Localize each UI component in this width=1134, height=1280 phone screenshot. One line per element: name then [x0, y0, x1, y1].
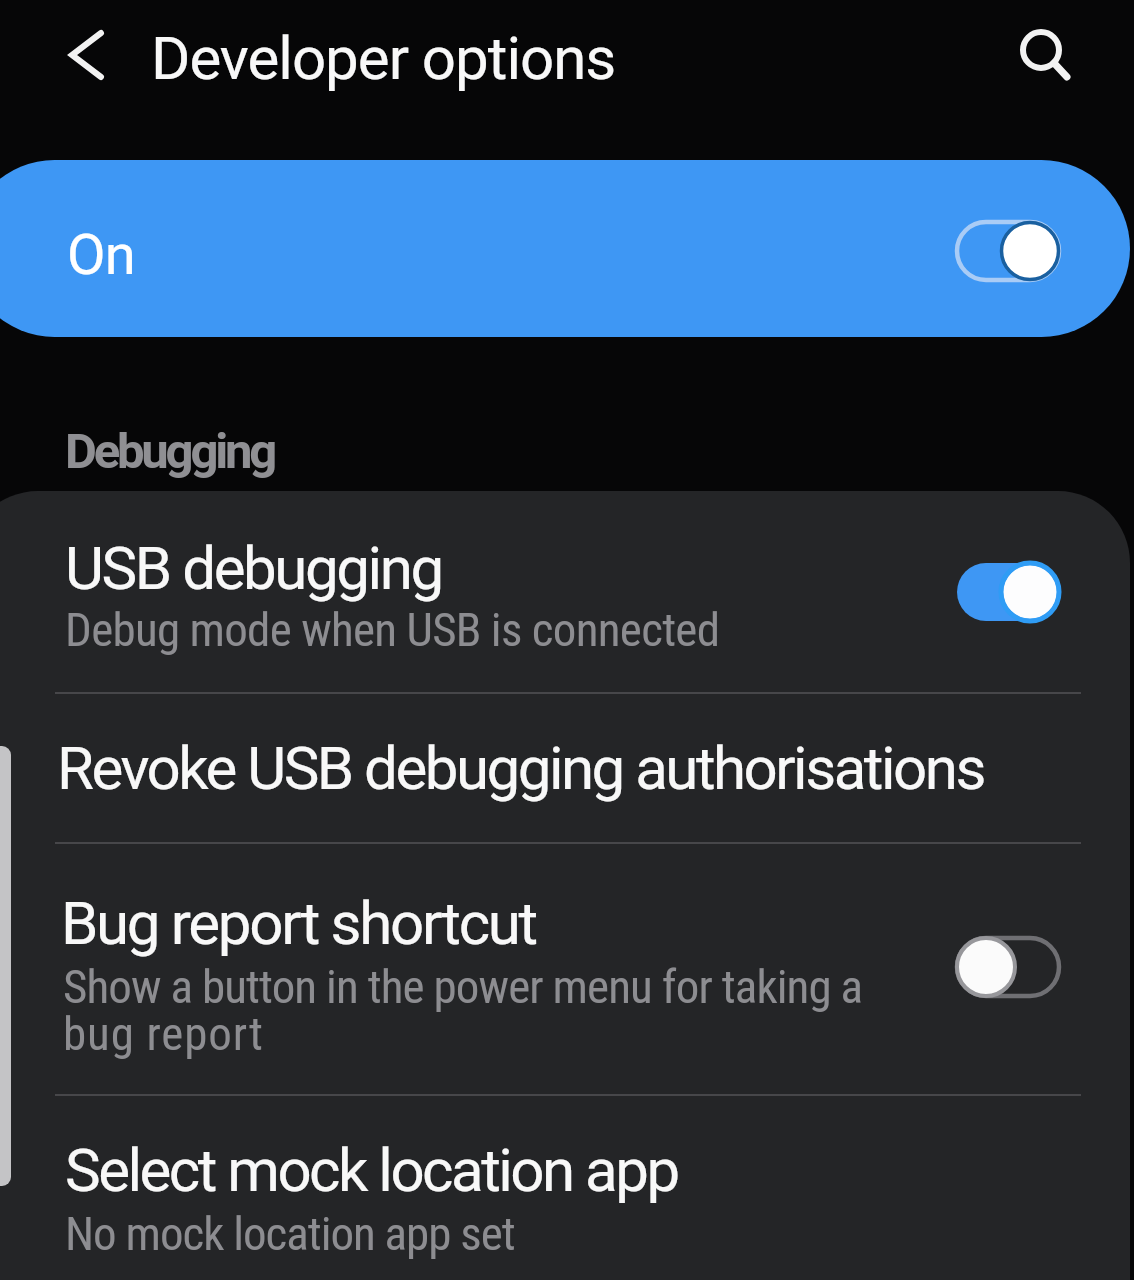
button[interactable]: [953, 559, 1065, 625]
staticText: Developer options: [151, 23, 616, 93]
staticText: USB debugging: [65, 533, 442, 603]
staticText: Bug report shortcut: [61, 888, 536, 958]
button[interactable]: [0, 844, 1134, 1094]
staticText: Revoke USB debugging authorisations: [57, 733, 984, 803]
staticText: Show a button in the power menu for taki…: [63, 959, 863, 1014]
button[interactable]: [0, 694, 1134, 842]
button[interactable]: [60, 27, 112, 83]
staticText: On: [67, 222, 135, 288]
staticText: Select mock location app: [65, 1135, 678, 1205]
button[interactable]: [0, 1096, 1134, 1280]
staticText: bug report: [63, 1006, 264, 1061]
button[interactable]: [953, 218, 1065, 284]
staticText: No mock location app set: [65, 1206, 515, 1261]
button[interactable]: [0, 497, 1134, 692]
staticText: Debugging: [65, 423, 274, 480]
button[interactable]: [1012, 22, 1074, 84]
button[interactable]: [0, 160, 1130, 337]
staticText: Debug mode when USB is connected: [65, 602, 720, 657]
button[interactable]: [953, 934, 1065, 1000]
